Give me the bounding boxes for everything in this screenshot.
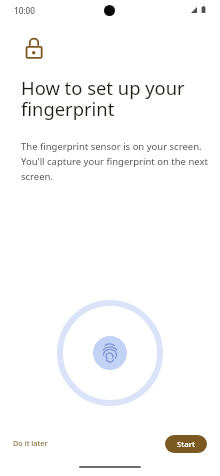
other: Screen lock (22, 36, 46, 60)
staticText: How to set up your fingerprint (21, 75, 196, 121)
other: Mobile signal (191, 7, 197, 13)
other: Battery (201, 6, 206, 13)
staticText: The fingerprint sensor is on your screen… (21, 140, 209, 183)
button[interactable]: Do it later (7, 434, 54, 452)
button[interactable]: Start (165, 435, 207, 453)
staticText: Do it later (13, 438, 48, 448)
staticText: Start (177, 439, 196, 450)
staticText: 10:00 (14, 5, 35, 16)
